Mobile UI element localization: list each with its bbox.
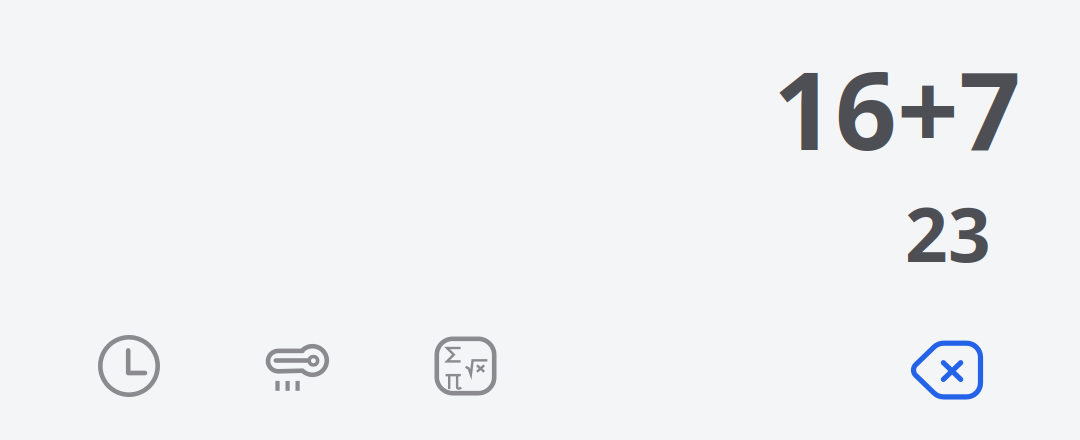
staticText: 23	[905, 183, 991, 283]
button[interactable]: Functions	[410, 318, 520, 414]
button[interactable]: History	[74, 318, 184, 414]
button[interactable]: Unit converter	[242, 320, 352, 416]
staticText: 16+7	[773, 36, 1021, 180]
button[interactable]: Delete	[892, 323, 1002, 419]
